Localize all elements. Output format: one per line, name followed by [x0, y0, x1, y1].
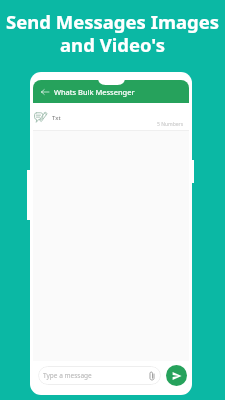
other: Attach file [147, 371, 157, 381]
button[interactable]: Type a message [38, 366, 161, 385]
button[interactable]: Txt [33, 103, 189, 130]
button[interactable]: Send [166, 365, 187, 386]
staticText: Type a message [43, 371, 147, 380]
staticText: Txt [52, 114, 61, 122]
staticText: 5 Numbers [157, 121, 184, 128]
button[interactable]: Back [41, 88, 49, 96]
staticText: Send Messages Images and Video's [0, 9, 225, 57]
staticText: Whats Bulk Messenger [54, 87, 135, 97]
